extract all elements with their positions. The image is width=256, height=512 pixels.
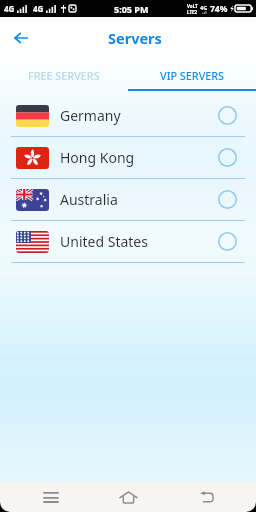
staticText: 4G bbox=[200, 4, 208, 11]
button[interactable]: FREE SERVERS bbox=[0, 59, 128, 91]
staticText: VoLT bbox=[187, 3, 198, 9]
staticText: LTE2 bbox=[187, 9, 198, 15]
staticText: United States bbox=[60, 232, 148, 251]
staticText: Germany bbox=[60, 106, 121, 125]
button[interactable]: Hong Kong bbox=[0, 137, 256, 179]
staticText: 4G bbox=[4, 3, 15, 14]
staticText: 4G bbox=[33, 3, 44, 14]
button[interactable]: Back bbox=[6, 23, 36, 53]
button[interactable]: Germany bbox=[0, 95, 256, 137]
staticText: Servers bbox=[108, 28, 162, 48]
staticText: FREE SERVERS bbox=[28, 68, 100, 83]
button[interactable]: Recent apps bbox=[30, 482, 71, 512]
staticText: Hong Kong bbox=[60, 148, 135, 167]
staticText: Australia bbox=[60, 190, 118, 209]
staticText: 74% bbox=[210, 3, 228, 15]
staticText: VIP SERVERS bbox=[160, 68, 225, 83]
button[interactable]: VIP SERVERS bbox=[128, 59, 256, 91]
button[interactable]: Australia bbox=[0, 179, 256, 221]
button[interactable]: Back bbox=[186, 482, 227, 512]
staticText: 5:05 PM bbox=[114, 3, 149, 15]
button[interactable]: United States bbox=[0, 221, 256, 263]
button[interactable]: Home bbox=[108, 482, 149, 512]
